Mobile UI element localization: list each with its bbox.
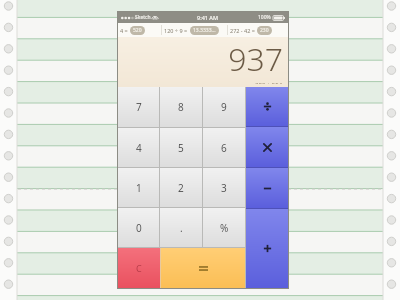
staticText: % xyxy=(220,221,229,235)
staticText: 3 xyxy=(221,181,227,195)
staticText: 272 - 42 = xyxy=(230,27,255,34)
button[interactable]: % xyxy=(203,208,245,247)
button[interactable]: 120 ÷ 9 = xyxy=(162,23,227,37)
button[interactable]: Subtract xyxy=(246,168,288,208)
button[interactable]: 2 xyxy=(160,168,202,207)
staticText: 520 xyxy=(133,27,142,34)
staticText: 6 xyxy=(221,141,227,155)
staticText: 1 xyxy=(136,181,142,195)
staticText: 383 + 554 xyxy=(255,81,283,84)
button[interactable]: 0 xyxy=(118,208,159,247)
staticText: 8 xyxy=(178,100,184,114)
staticText: 9:41 AM xyxy=(197,14,219,21)
button[interactable]: 9 xyxy=(203,87,245,127)
button[interactable]: 7 xyxy=(118,87,159,127)
staticText: 230 xyxy=(260,27,269,34)
staticText: . xyxy=(180,221,183,235)
button[interactable]: Equals xyxy=(161,248,245,288)
staticText: 9 xyxy=(221,100,227,114)
staticText: 7 xyxy=(136,100,142,114)
button[interactable]: 1 xyxy=(118,168,159,207)
button[interactable]: C xyxy=(118,248,160,288)
staticText: 100% xyxy=(258,14,271,21)
staticText: 5 xyxy=(178,141,184,155)
staticText: 937 xyxy=(228,37,283,81)
staticText: 120 ÷ 9 = xyxy=(164,27,188,34)
button[interactable]: 8 xyxy=(160,87,202,127)
button[interactable]: 4 = xyxy=(118,23,161,37)
button[interactable]: Add xyxy=(246,209,288,288)
button[interactable]: 937 xyxy=(118,37,288,87)
button[interactable]: Divide xyxy=(246,87,288,126)
staticText: 4 = xyxy=(120,27,128,34)
button[interactable]: 5 xyxy=(160,128,202,167)
staticText: 13.3333... xyxy=(193,27,216,34)
button[interactable]: Multiply xyxy=(246,127,288,167)
staticText: C xyxy=(136,262,142,274)
staticText: 0 xyxy=(136,221,142,235)
staticText: 4 xyxy=(136,141,142,155)
staticText: 2 xyxy=(178,181,184,195)
button[interactable]: 4 xyxy=(118,128,159,167)
staticText: Sketch xyxy=(135,14,151,21)
button[interactable]: 3 xyxy=(203,168,245,207)
button[interactable]: . xyxy=(160,208,202,247)
button[interactable]: 6 xyxy=(203,128,245,167)
button[interactable]: 272 - 42 = xyxy=(228,23,288,37)
